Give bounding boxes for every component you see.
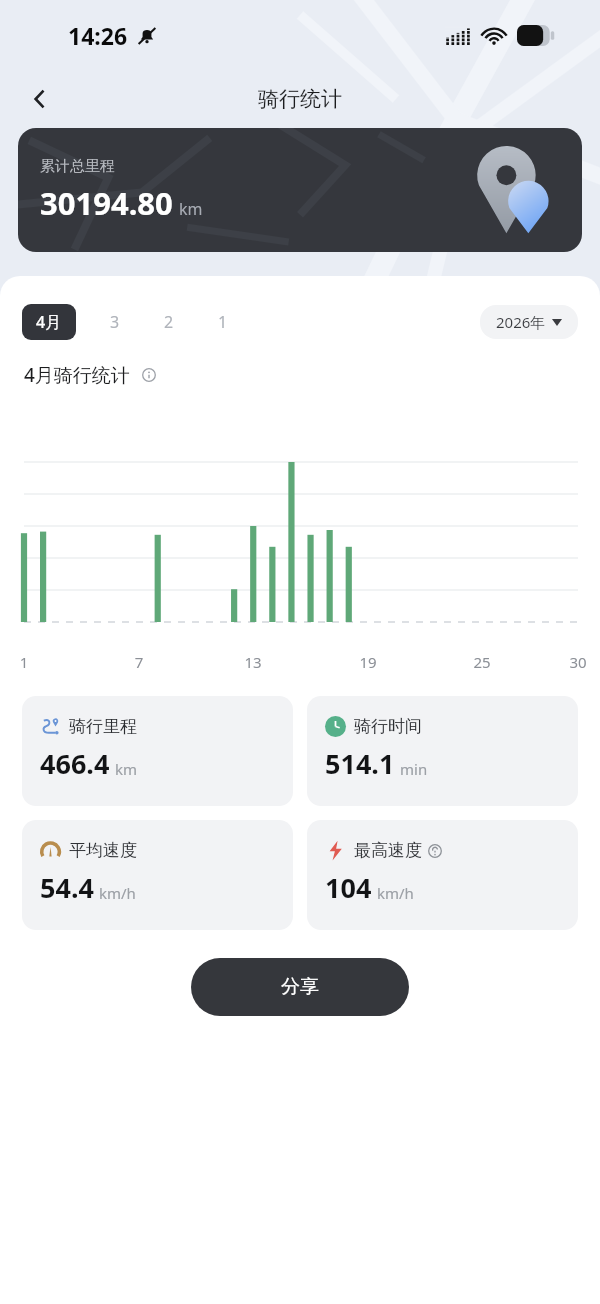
staticText: 累计总里程 (40, 157, 115, 176)
button[interactable]: 骑行里程 (22, 696, 293, 806)
staticText: 1 (218, 311, 228, 333)
staticText: 7 (123, 652, 155, 672)
staticText: 分享 (281, 975, 319, 999)
button[interactable]: Info (137, 363, 161, 387)
staticText: 平均速度 (69, 840, 137, 861)
staticText: 1 (8, 652, 40, 672)
staticText: 4月 (36, 311, 62, 333)
staticText: km (115, 759, 138, 779)
staticText: 最高速度 (354, 840, 422, 861)
staticText: 2 (164, 311, 174, 333)
staticText: min (400, 759, 428, 779)
button[interactable]: 分享 (191, 958, 409, 1016)
staticText: km (179, 198, 203, 220)
staticText: 2026年 (496, 312, 546, 332)
staticText: 4月骑行统计 (24, 362, 130, 388)
staticText: 30 (562, 652, 594, 672)
button[interactable]: 4月 (22, 304, 76, 340)
staticText: 54.4 (40, 869, 94, 906)
button[interactable]: 平均速度 (22, 820, 293, 930)
staticText: 骑行时间 (354, 716, 422, 737)
button[interactable]: 骑行时间 (307, 696, 578, 806)
staticText: 104 (325, 869, 372, 906)
staticText: 466.4 (40, 745, 110, 782)
staticText: 13 (237, 652, 269, 672)
staticText: 14:26 (68, 20, 128, 51)
staticText: 19 (352, 652, 384, 672)
staticText: km/h (377, 883, 414, 903)
button[interactable]: 2 (148, 304, 190, 340)
staticText: 3 (110, 311, 120, 333)
staticText: 514.1 (325, 745, 395, 782)
button[interactable]: 累计总里程 (18, 128, 582, 252)
staticText: 骑行里程 (69, 716, 137, 737)
staticText: 25 (466, 652, 498, 672)
staticText: 30194.80 (40, 182, 173, 224)
button[interactable]: Back (16, 75, 64, 123)
button[interactable]: 3 (94, 304, 136, 340)
button[interactable]: 1 (202, 304, 244, 340)
button[interactable]: 2026年 (480, 305, 578, 339)
button[interactable]: 最高速度 (307, 820, 578, 930)
staticText: 骑行统计 (258, 86, 342, 112)
staticText: km/h (99, 883, 136, 903)
